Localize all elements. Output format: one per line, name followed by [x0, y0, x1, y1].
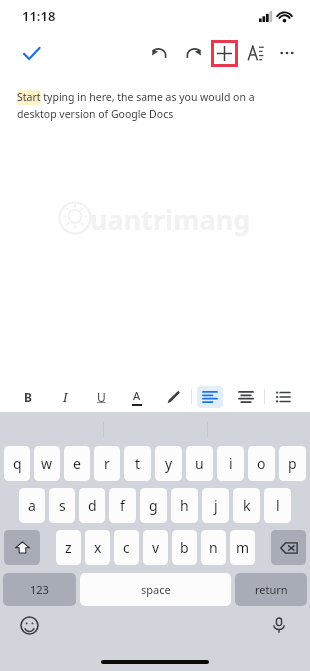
staticText: e	[73, 454, 81, 473]
staticText: Start typing in here, the same as you wo…	[17, 90, 288, 121]
staticText: f	[120, 496, 125, 515]
staticText: x	[94, 538, 102, 557]
staticText: u	[195, 454, 204, 473]
button[interactable]: u	[186, 446, 213, 481]
button[interactable]: r	[94, 446, 120, 481]
button[interactable]: Bold	[9, 381, 46, 412]
button[interactable]: j	[202, 488, 229, 523]
button[interactable]: e	[64, 446, 90, 481]
staticText: h	[180, 496, 189, 515]
staticText: U	[97, 389, 106, 405]
staticText: v	[152, 538, 160, 557]
button[interactable]: Redo	[178, 38, 208, 68]
button[interactable]: a	[19, 488, 45, 523]
button[interactable]: Insert	[214, 43, 235, 64]
button[interactable]: n	[201, 530, 226, 565]
staticText: i	[229, 454, 233, 473]
staticText: r	[104, 454, 110, 473]
button[interactable]: Underline	[83, 381, 119, 412]
staticText: o	[257, 454, 266, 473]
staticText: return	[255, 582, 288, 597]
button[interactable]: h	[171, 488, 198, 523]
button[interactable]: f	[109, 488, 136, 523]
staticText: s	[59, 496, 66, 515]
button[interactable]: k	[233, 488, 260, 523]
button[interactable]: o	[248, 446, 275, 481]
button[interactable]: Done	[16, 38, 46, 68]
button[interactable]: Highlight	[155, 381, 191, 412]
button[interactable]: v	[143, 530, 168, 565]
button[interactable]: More options	[272, 38, 302, 68]
staticText: g	[149, 496, 158, 515]
staticText: 123	[30, 582, 49, 597]
button[interactable]: y	[155, 446, 182, 481]
button[interactable]: b	[172, 530, 197, 565]
button[interactable]: i	[217, 446, 244, 481]
staticText: t	[135, 454, 141, 473]
button[interactable]: p	[279, 446, 306, 481]
button[interactable]: Italic	[46, 381, 83, 412]
staticText: p	[288, 454, 297, 473]
staticText: space	[141, 582, 171, 597]
button[interactable]: Align center	[228, 381, 264, 412]
staticText: a	[28, 496, 36, 515]
button[interactable]: s	[49, 488, 75, 523]
button[interactable]: Emoji	[18, 614, 40, 636]
button[interactable]: Bulleted list	[265, 381, 301, 412]
button[interactable]: Shift	[4, 530, 40, 565]
staticText: 11:18	[22, 7, 56, 25]
staticText: uantrimang	[90, 201, 251, 238]
staticText: m	[236, 538, 250, 557]
staticText: b	[180, 538, 189, 557]
button[interactable]: Dictation	[268, 614, 290, 636]
button[interactable]: x	[85, 530, 110, 565]
button[interactable]: l	[264, 488, 291, 523]
staticText: l	[276, 496, 280, 515]
button[interactable]: return	[235, 573, 307, 606]
staticText: A	[133, 388, 141, 403]
button[interactable]: Backspace	[271, 530, 306, 565]
staticText: n	[209, 538, 218, 557]
button[interactable]: space	[80, 573, 231, 606]
staticText: j	[214, 496, 218, 515]
button[interactable]: c	[114, 530, 139, 565]
staticText: k	[243, 496, 251, 515]
button[interactable]: z	[56, 530, 81, 565]
button[interactable]: d	[79, 488, 105, 523]
button[interactable]: Align left	[192, 381, 228, 412]
staticText: d	[88, 496, 97, 515]
staticText: c	[123, 538, 130, 557]
staticText: z	[65, 538, 72, 557]
staticText: B	[24, 389, 32, 405]
button[interactable]: Text color	[119, 381, 155, 412]
button[interactable]: w	[34, 446, 60, 481]
button[interactable]: g	[140, 488, 167, 523]
staticText: w	[41, 454, 53, 473]
button[interactable]: t	[124, 446, 151, 481]
button[interactable]: 123	[3, 573, 76, 606]
button[interactable]: Text formatting	[241, 38, 271, 68]
staticText: I	[63, 389, 68, 405]
staticText: y	[165, 454, 173, 473]
staticText: q	[13, 454, 22, 473]
button[interactable]: Undo	[144, 38, 174, 68]
button[interactable]: m	[230, 530, 255, 565]
button[interactable]: q	[4, 446, 30, 481]
